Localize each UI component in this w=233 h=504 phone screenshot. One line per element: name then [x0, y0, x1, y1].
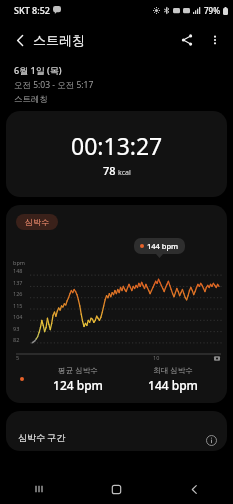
staticText: 124 bpm — [53, 377, 103, 393]
staticText: 5 — [16, 354, 20, 361]
staticText: 126 — [13, 290, 23, 297]
staticText: 10 — [153, 354, 160, 361]
button[interactable]: Share — [173, 26, 201, 54]
staticText: SKT 8:52 — [14, 4, 50, 16]
staticText: 00:13:27 — [71, 130, 163, 161]
staticText: bpm — [13, 259, 25, 266]
staticText: 6월 1일 (목) — [14, 64, 62, 76]
staticText: 144 bpm — [147, 241, 179, 251]
staticText: 최대 심박수 — [153, 365, 193, 375]
staticText: 79% — [204, 5, 220, 16]
staticText: 78 — [103, 163, 116, 178]
staticText: 144 bpm — [148, 377, 198, 393]
button[interactable]: Home — [77, 474, 155, 504]
button[interactable]: Info — [203, 432, 219, 448]
button[interactable]: Back — [6, 26, 34, 54]
button[interactable]: Recents — [0, 474, 77, 504]
staticText: 137 — [13, 279, 23, 286]
staticText: 82 — [13, 336, 20, 343]
staticText: 148 — [13, 267, 23, 274]
staticText: 스트레칭 — [14, 94, 48, 105]
staticText: 평균 심박수 — [58, 365, 98, 375]
staticText: 93 — [13, 325, 20, 332]
button[interactable]: 심박수 구간 — [6, 411, 227, 451]
button[interactable]: 심박수 — [16, 214, 58, 230]
staticText: 115 — [13, 302, 23, 309]
staticText: kcal — [118, 168, 131, 178]
staticText: 오전 5:03 - 오전 5:17 — [14, 79, 94, 91]
staticText: 104 — [13, 313, 23, 320]
button[interactable]: More options — [201, 26, 229, 54]
button[interactable]: Back — [155, 474, 233, 504]
button[interactable]: 심박수 — [6, 205, 227, 403]
staticText: 심박수 구간 — [18, 431, 66, 443]
staticText: 심박수 — [25, 217, 49, 227]
button[interactable]: 00:13:27 — [6, 111, 227, 197]
staticText: 스트레칭 — [33, 32, 85, 48]
